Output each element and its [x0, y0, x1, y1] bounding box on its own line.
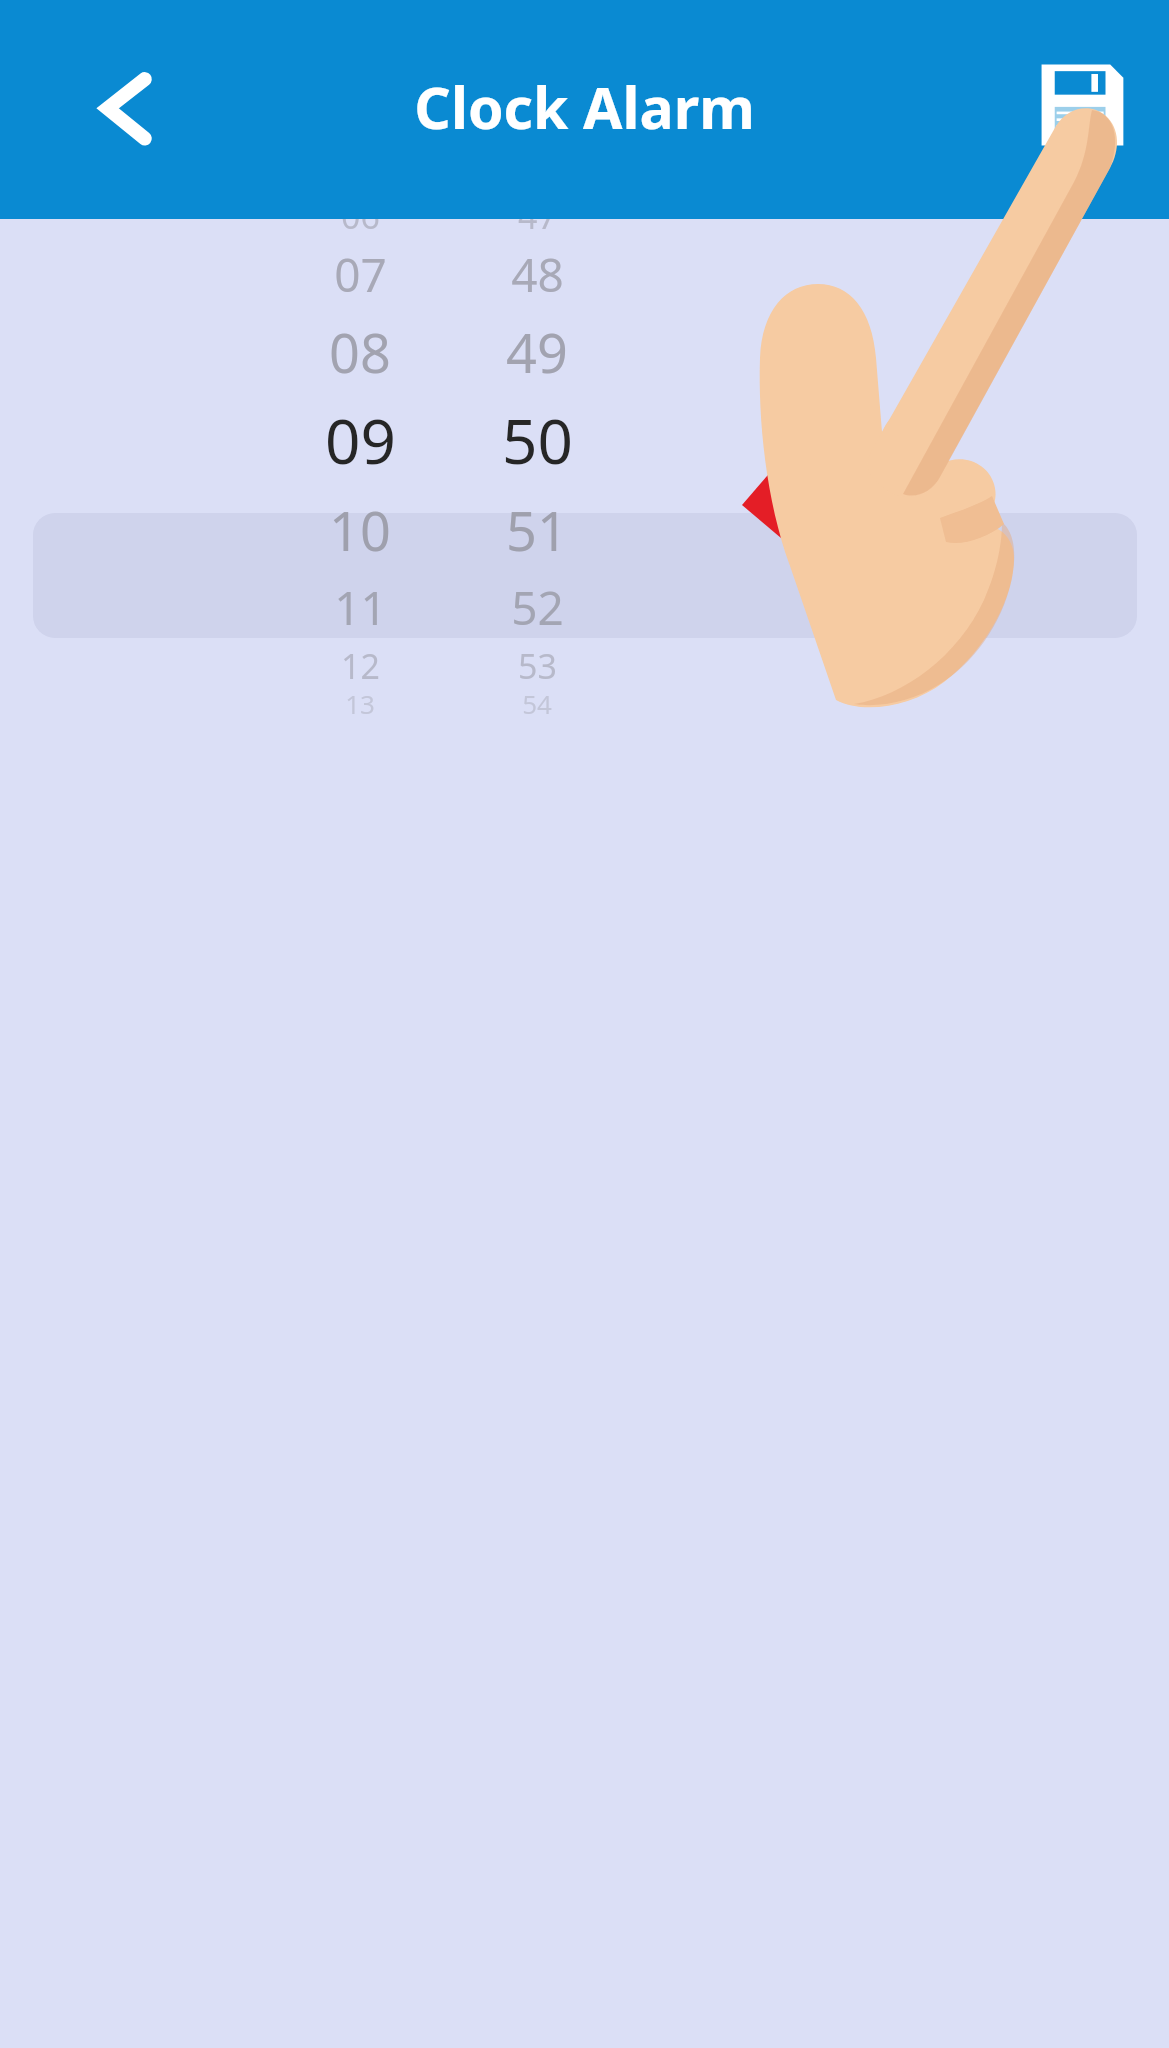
button[interactable]: 08 — [245, 309, 475, 395]
staticText: 53 — [518, 643, 557, 689]
staticText: 47 — [518, 193, 557, 239]
button[interactable]: 10 — [245, 487, 475, 573]
button[interactable]: 06 — [245, 189, 475, 243]
button[interactable]: 07 — [245, 237, 475, 311]
staticText: 07 — [334, 243, 387, 306]
staticText: 51 — [506, 493, 568, 567]
staticText: 48 — [511, 243, 564, 306]
button[interactable]: 13 — [245, 682, 475, 724]
button[interactable]: Back — [68, 50, 188, 162]
button[interactable]: Save — [1035, 58, 1129, 152]
staticText: 13 — [345, 686, 375, 721]
button[interactable]: 11 — [245, 570, 475, 644]
button[interactable]: 47 — [422, 189, 652, 243]
button[interactable]: 50 — [422, 390, 652, 489]
staticText: 11 — [334, 576, 387, 639]
staticText: 09 — [325, 398, 396, 482]
button[interactable]: 54 — [422, 682, 652, 724]
button[interactable] — [33, 513, 1137, 638]
staticText: 49 — [506, 315, 568, 389]
button[interactable]: 48 — [422, 237, 652, 311]
staticText: 54 — [522, 686, 552, 721]
staticText: 10 — [329, 493, 391, 567]
button[interactable]: 53 — [422, 639, 652, 693]
button[interactable]: 49 — [422, 309, 652, 395]
staticText: 12 — [341, 643, 380, 689]
button[interactable]: 12 — [245, 639, 475, 693]
staticText: Clock Alarm — [414, 68, 755, 146]
staticText: 08 — [329, 315, 391, 389]
button[interactable]: 52 — [422, 570, 652, 644]
button[interactable]: 51 — [422, 487, 652, 573]
staticText: 52 — [511, 576, 564, 639]
button[interactable]: 09 — [245, 390, 475, 489]
staticText: 06 — [341, 193, 380, 239]
staticText: 50 — [502, 398, 573, 482]
